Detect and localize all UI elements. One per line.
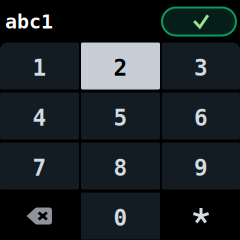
- button[interactable]: 1: [0, 42, 79, 89]
- button[interactable]: Delete: [0, 192, 79, 239]
- button[interactable]: Done: [162, 7, 236, 35]
- staticText: 6: [194, 105, 208, 131]
- staticText: 2: [113, 55, 127, 81]
- button[interactable]: Asterisk: [162, 192, 240, 239]
- button[interactable]: 0: [81, 192, 160, 239]
- staticText: 0: [113, 205, 127, 231]
- staticText: 5: [113, 105, 127, 131]
- staticText: 7: [32, 155, 46, 181]
- button[interactable]: 4: [0, 92, 79, 139]
- button[interactable]: 8: [81, 142, 160, 189]
- staticText: 3: [194, 55, 208, 81]
- staticText: 8: [113, 155, 127, 181]
- staticText: abc1: [5, 10, 53, 33]
- staticText: 4: [32, 105, 46, 131]
- button[interactable]: 6: [162, 92, 240, 139]
- button[interactable]: 5: [81, 92, 160, 139]
- button[interactable]: 9: [162, 142, 240, 189]
- staticText: 9: [194, 155, 208, 181]
- staticText: 1: [32, 55, 46, 81]
- button[interactable]: 7: [0, 142, 79, 189]
- button[interactable]: 2: [81, 42, 160, 89]
- button[interactable]: 3: [162, 42, 240, 89]
